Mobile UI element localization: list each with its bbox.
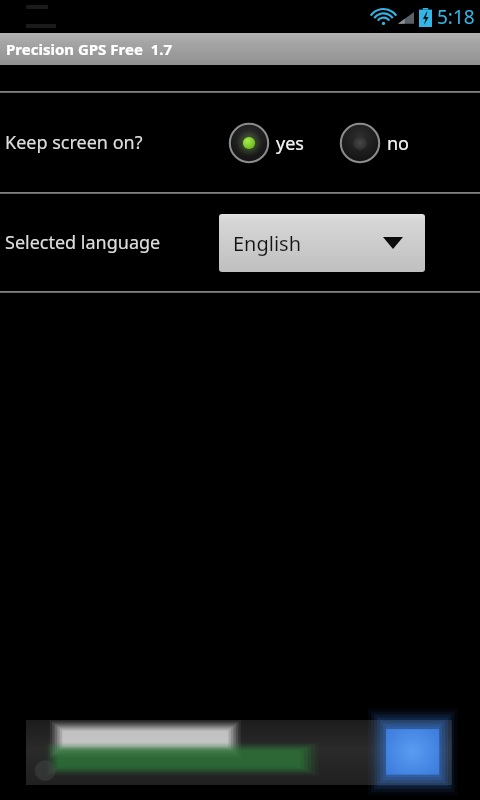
staticText: no <box>387 131 410 156</box>
staticText: English <box>233 230 302 257</box>
staticText: 5:18 <box>437 4 475 30</box>
button[interactable]: English <box>219 214 425 272</box>
staticText: yes <box>276 131 304 156</box>
button[interactable]: Advertisement <box>26 720 452 785</box>
button[interactable]: no <box>334 115 412 171</box>
staticText: Keep screen on? <box>5 130 143 155</box>
button[interactable]: yes <box>223 115 306 171</box>
staticText: Selected language <box>5 230 161 255</box>
staticText: Precision GPS Free 1.7 <box>6 39 173 59</box>
